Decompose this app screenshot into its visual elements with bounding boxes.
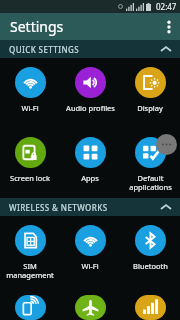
staticText: Screen lock [10, 173, 50, 183]
staticText: WIRELESS & NETWORKS [9, 202, 108, 213]
staticText: Wi-Fi [21, 103, 39, 113]
staticText: QUICK SETTINGS [9, 44, 80, 55]
button[interactable]: Bluetooth [120, 216, 180, 286]
button[interactable]: Data usage [120, 286, 180, 320]
staticText: Settings [10, 17, 64, 36]
staticText: Audio profiles [66, 103, 115, 113]
button[interactable]: Audio profiles [60, 58, 120, 128]
button[interactable]: QUICK SETTINGS [0, 40, 180, 58]
button[interactable]: Wi-Fi [60, 216, 120, 286]
staticText: Apps [81, 173, 99, 183]
button[interactable]: WIRELESS & NETWORKS [0, 198, 180, 216]
staticText: Default applications [129, 173, 172, 192]
staticText: SIM management [6, 261, 54, 280]
button[interactable]: Airplane mode [60, 286, 120, 320]
button[interactable]: Apps [60, 128, 120, 198]
staticText: Wi-Fi [81, 261, 99, 271]
button[interactable]: More options [156, 134, 177, 155]
button[interactable]: SIM management [0, 216, 60, 286]
staticText: Display [137, 103, 163, 113]
staticText: Bluetooth [133, 261, 168, 271]
button[interactable]: Tethering & portable [0, 286, 60, 320]
button[interactable]: More options [158, 13, 180, 40]
button[interactable]: Display [120, 58, 180, 128]
button[interactable]: Default applications [120, 128, 180, 198]
staticText: 02:47 [156, 1, 177, 12]
button[interactable]: Screen lock [0, 128, 60, 198]
button[interactable]: Wi-Fi [0, 58, 60, 128]
